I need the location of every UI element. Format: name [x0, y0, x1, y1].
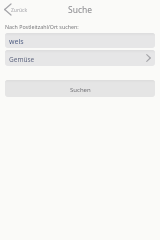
- button[interactable]: Gemüse: [0, 50, 160, 66]
- staticText: Suchen: [70, 86, 91, 94]
- staticText: Zurück: [11, 7, 28, 14]
- staticText: wels: [9, 37, 24, 47]
- staticText: Suche: [68, 4, 93, 16]
- staticText: Gemüse: [9, 55, 35, 64]
- button[interactable]: wels: [0, 33, 160, 48]
- other: Zurück: [4, 4, 11, 15]
- staticText: Nach Postleitzahl/Ort suchen:: [5, 23, 79, 30]
- button[interactable]: Suchen: [0, 80, 160, 97]
- other: Kategorie auswählen: [146, 54, 151, 62]
- button[interactable]: Zurück: [4, 0, 28, 18]
